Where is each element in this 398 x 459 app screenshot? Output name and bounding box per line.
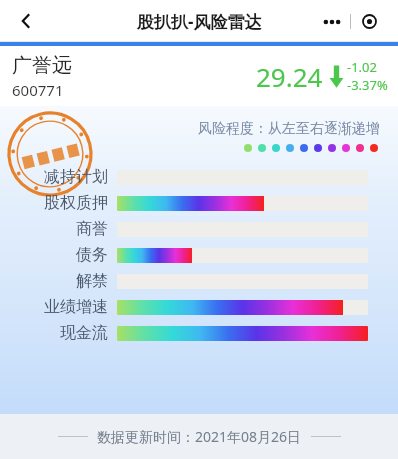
staticText: 600771 — [12, 80, 64, 100]
button[interactable]: 债务 — [0, 242, 398, 268]
staticText: 广誉远 — [12, 53, 72, 78]
staticText: 业绩增速 — [8, 297, 108, 317]
staticText: 股扒扒-风险雷达 — [137, 10, 262, 33]
button[interactable]: 业绩增速 — [0, 294, 398, 320]
button[interactable]: Close — [351, 8, 388, 35]
staticText: 29.24 — [256, 59, 323, 94]
staticText: -1.02 — [347, 58, 377, 76]
staticText: -3.37% — [347, 76, 388, 94]
button[interactable]: More options — [313, 8, 350, 35]
button[interactable]: Back — [6, 1, 46, 41]
staticText: 债务 — [8, 245, 108, 265]
button[interactable]: 股权质押 — [0, 190, 398, 216]
staticText: 股权质押 — [8, 193, 108, 213]
button[interactable]: 减持计划 — [0, 164, 398, 190]
button[interactable]: 商誉 — [0, 216, 398, 242]
staticText: 风险程度：从左至右逐渐递增 — [198, 120, 380, 138]
staticText: 数据更新时间：2021年08月26日 — [97, 427, 302, 446]
staticText: 解禁 — [8, 271, 108, 291]
staticText: 商誉 — [8, 219, 108, 239]
button[interactable]: 解禁 — [0, 268, 398, 294]
button[interactable]: 现金流 — [0, 320, 398, 346]
staticText: 现金流 — [8, 323, 108, 343]
staticText: 减持计划 — [8, 167, 108, 187]
